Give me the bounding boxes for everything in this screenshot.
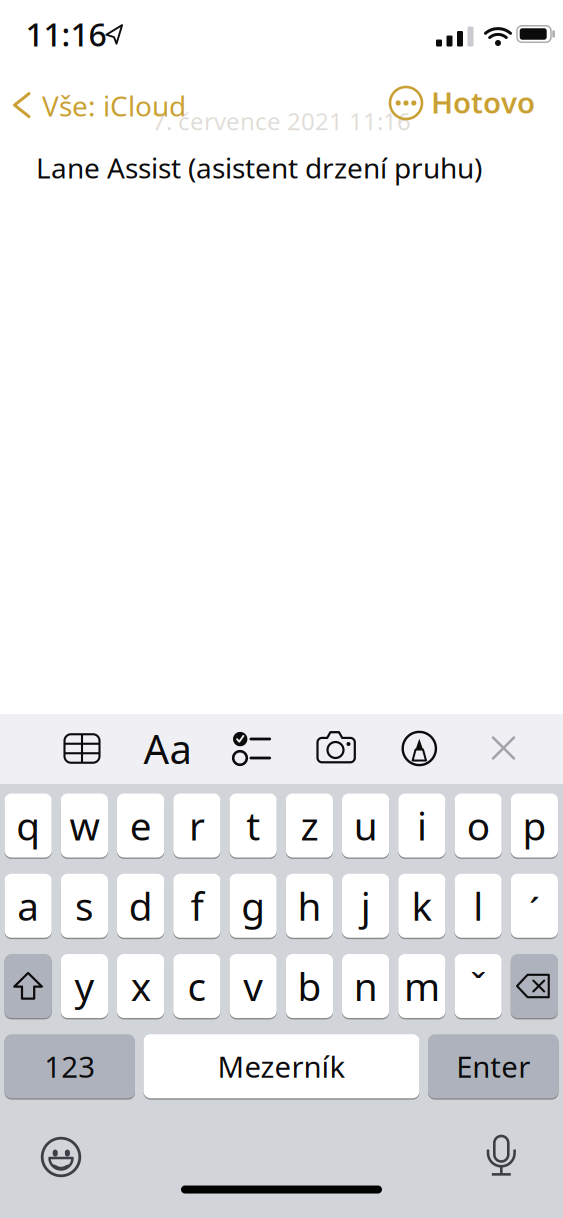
button[interactable]: f xyxy=(173,874,220,938)
staticText: ´ xyxy=(529,885,540,936)
staticText: Aa xyxy=(143,722,191,775)
button[interactable]: More xyxy=(390,87,422,119)
button[interactable]: v xyxy=(229,954,277,1018)
staticText: n xyxy=(354,960,378,1012)
staticText: g xyxy=(241,880,265,931)
staticText: f xyxy=(190,880,203,931)
staticText: Hotovo xyxy=(431,82,535,121)
staticText: e xyxy=(130,800,152,851)
staticText: v xyxy=(243,960,263,1012)
button[interactable]: n xyxy=(342,954,389,1018)
button[interactable]: Checklist xyxy=(228,725,274,771)
button[interactable]: y xyxy=(61,954,108,1018)
button[interactable]: p xyxy=(511,793,558,857)
button[interactable]: m xyxy=(398,954,445,1018)
staticText: Lane Assist (asistent drzení pruhu) xyxy=(36,149,482,186)
button[interactable]: c xyxy=(173,954,220,1018)
staticText: o xyxy=(467,800,490,851)
staticText: d xyxy=(129,880,153,931)
staticText: j xyxy=(361,880,371,931)
button[interactable]: j xyxy=(342,874,389,938)
button[interactable]: Markup xyxy=(396,725,442,771)
button[interactable]: Emoji xyxy=(40,1136,82,1178)
staticText: Vše: iCloud xyxy=(42,87,186,124)
staticText: p xyxy=(522,800,546,851)
button[interactable]: 123 xyxy=(4,1034,135,1098)
button[interactable]: ´ xyxy=(511,874,558,938)
staticText: x xyxy=(131,960,151,1012)
staticText: q xyxy=(16,800,40,851)
staticText: w xyxy=(69,800,99,851)
staticText: c xyxy=(187,960,206,1012)
button[interactable]: Hotovo xyxy=(431,82,535,121)
staticText: z xyxy=(300,800,318,851)
staticText: h xyxy=(297,880,321,931)
button[interactable]: w xyxy=(61,793,108,857)
staticText: 123 xyxy=(44,1047,95,1086)
button[interactable]: g xyxy=(229,874,277,938)
staticText: l xyxy=(473,880,483,931)
button[interactable]: ˇ xyxy=(454,954,502,1018)
staticText: m xyxy=(404,960,440,1012)
button[interactable]: Format xyxy=(139,725,195,771)
staticText: u xyxy=(354,800,378,851)
button[interactable]: b xyxy=(286,954,333,1018)
button[interactable]: e xyxy=(117,793,164,857)
staticText: s xyxy=(75,880,94,931)
button[interactable]: s xyxy=(61,874,108,938)
button[interactable]: x xyxy=(117,954,164,1018)
button[interactable]: k xyxy=(398,874,445,938)
staticText: y xyxy=(74,960,94,1012)
button[interactable]: a xyxy=(4,874,52,938)
button[interactable]: h xyxy=(286,874,333,938)
staticText: a xyxy=(17,880,39,931)
button[interactable]: Dismiss Keyboard xyxy=(480,725,526,771)
button[interactable]: i xyxy=(398,793,445,857)
staticText: ˇ xyxy=(470,960,486,1012)
button[interactable]: o xyxy=(454,793,502,857)
button[interactable]: u xyxy=(342,793,389,857)
staticText: 7. července 2021 11:16 xyxy=(152,105,411,137)
staticText: b xyxy=(297,960,321,1012)
button[interactable]: Mezerník xyxy=(143,1034,419,1098)
button[interactable]: l xyxy=(454,874,502,938)
button[interactable]: Dictation xyxy=(484,1134,518,1178)
staticText: t xyxy=(246,800,260,851)
staticText: i xyxy=(417,800,427,851)
button[interactable]: t xyxy=(229,793,277,857)
button[interactable]: r xyxy=(173,793,220,857)
button[interactable]: q xyxy=(4,793,52,857)
staticText: r xyxy=(189,800,205,851)
staticText: Enter xyxy=(456,1047,530,1086)
button[interactable]: Delete xyxy=(511,954,558,1018)
button[interactable]: Shift xyxy=(4,954,52,1018)
button[interactable]: d xyxy=(117,874,164,938)
button[interactable]: Enter xyxy=(428,1034,558,1098)
staticText: k xyxy=(411,880,432,931)
button[interactable]: Insert Table xyxy=(59,725,105,771)
staticText: 11:16 xyxy=(25,13,106,55)
staticText: Mezerník xyxy=(217,1047,345,1086)
button[interactable]: Camera xyxy=(313,726,359,772)
button[interactable]: z xyxy=(286,793,333,857)
button[interactable]: Vše: iCloud xyxy=(12,87,186,124)
